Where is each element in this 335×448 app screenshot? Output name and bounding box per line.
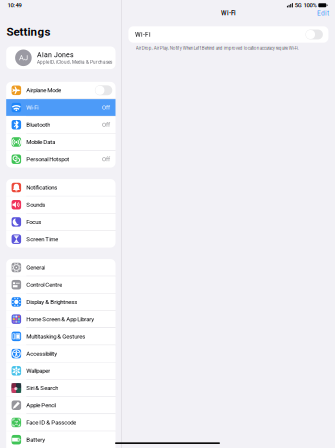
button[interactable]: Bluetooth [6,116,115,133]
staticText: Control Centre [26,281,62,288]
staticText: 10:49 [7,2,21,9]
staticText: Wi-Fi [135,31,151,38]
button[interactable]: Face ID & Passcode [6,414,115,431]
staticText: Settings [7,25,51,39]
staticText: Wi-Fi [26,104,38,111]
staticText: Apple Pencil [26,402,56,409]
button[interactable]: Control Centre [6,276,115,293]
button[interactable]: Sounds [6,196,115,213]
staticText: Wallpaper [26,367,50,374]
staticText: Siri & Search [26,384,58,391]
staticText: Face ID & Passcode [26,419,76,426]
button[interactable]: Multitasking & Gestures [6,328,115,345]
staticText: Wi-Fi [221,9,236,17]
staticText: Edit [317,9,329,17]
button[interactable]: Mobile Data [6,134,115,150]
button[interactable]: Home Screen & App Library [6,311,115,327]
button[interactable]: Wi-Fi [6,99,115,116]
staticText: Focus [26,218,41,225]
staticText: Accessibility [26,350,57,357]
staticText: General [26,264,45,271]
staticText: Notifications [26,184,57,191]
button[interactable]: Siri & Search [6,380,115,396]
staticText: Apple ID, iCloud, Media & Purchases [37,59,112,65]
staticText: Alan Jones [37,51,74,59]
staticText: Screen Time [26,236,58,243]
staticText: Off [102,156,110,163]
staticText: 100% [303,2,316,9]
button[interactable]: Battery [6,431,115,448]
button[interactable]: Screen Time [6,231,115,248]
staticText: Mobile Data [26,138,55,145]
button[interactable]: Accessibility [6,345,115,362]
button[interactable]: Notifications [6,179,115,196]
staticText: Display & Brightness [26,298,77,305]
staticText: Home Screen & App Library [26,316,94,323]
staticText: Personal Hotspot [26,156,69,163]
button[interactable]: AJ [6,46,115,69]
button[interactable]: Edit [314,6,331,20]
staticText: Multitasking & Gestures [26,333,85,340]
staticText: AJ [19,53,28,62]
button[interactable]: General [6,259,115,276]
staticText: Airplane Mode [26,87,61,94]
button[interactable]: Airplane Mode [6,82,115,99]
staticText: Off [102,104,110,111]
staticText: Sounds [26,201,45,208]
staticText: Off [102,121,110,128]
button[interactable]: Personal Hotspot [6,151,115,168]
button[interactable]: Display & Brightness [6,293,115,310]
button[interactable]: Focus [6,213,115,230]
staticText: Bluetooth [26,121,50,128]
button[interactable]: Wi-Fi [128,26,328,43]
button[interactable]: Wallpaper [6,362,115,379]
staticText: 5G [295,2,302,9]
staticText: Battery [26,436,45,443]
button[interactable]: Apple Pencil [6,397,115,414]
staticText: AirDrop, AirPlay, Notify When Left Behin… [136,46,299,51]
